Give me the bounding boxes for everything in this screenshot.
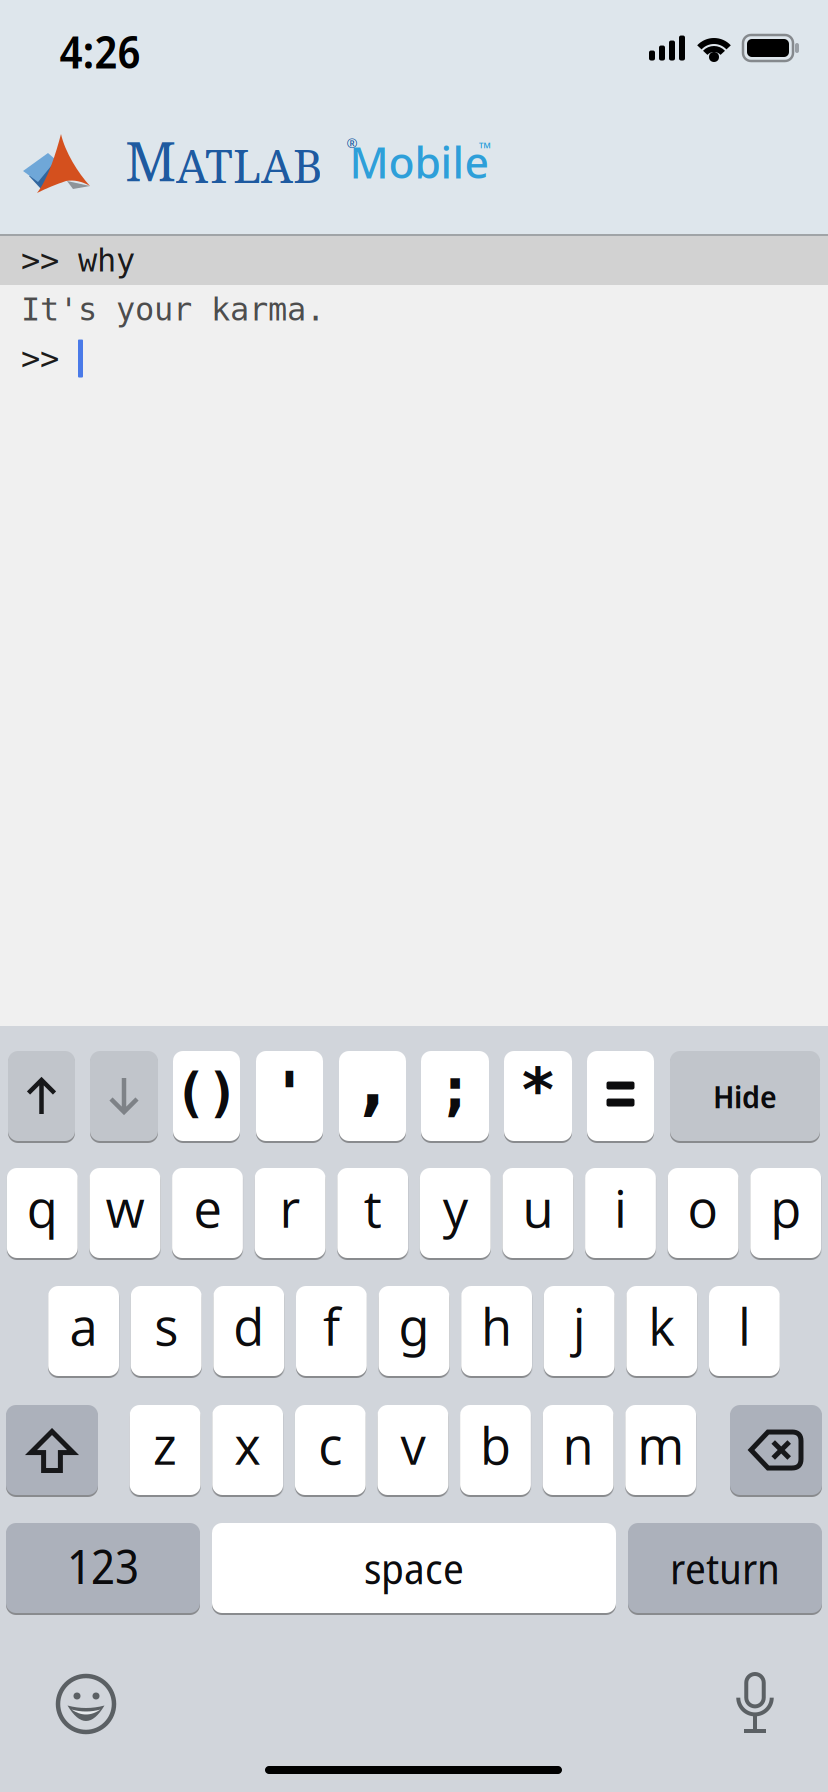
button[interactable]: r xyxy=(255,1168,325,1258)
staticText: Hide xyxy=(713,1075,777,1117)
staticText: ; xyxy=(437,1056,472,1122)
button[interactable]: Emoji xyxy=(55,1673,117,1735)
button[interactable]: Delete xyxy=(730,1405,822,1495)
button[interactable]: w xyxy=(89,1168,160,1258)
staticText: 4:26 xyxy=(59,20,140,82)
button[interactable]: q xyxy=(7,1168,78,1258)
button[interactable]: Shift xyxy=(6,1405,98,1495)
button[interactable]: n xyxy=(543,1405,613,1495)
button[interactable]: Scroll down xyxy=(90,1051,158,1141)
button[interactable]: 123 xyxy=(6,1523,200,1613)
staticText: i xyxy=(614,1173,627,1242)
staticText: g xyxy=(398,1291,429,1360)
button[interactable]: , xyxy=(339,1051,406,1141)
staticText: Mobile xyxy=(349,134,488,190)
staticText: ATLAB xyxy=(176,134,323,196)
button[interactable]: v xyxy=(377,1405,448,1495)
staticText: M xyxy=(125,123,176,197)
staticText: n xyxy=(563,1410,594,1479)
button[interactable]: d xyxy=(213,1286,284,1376)
button[interactable]: e xyxy=(172,1168,243,1258)
staticText: v xyxy=(400,1410,425,1479)
button[interactable]: x xyxy=(212,1405,283,1495)
staticText: t xyxy=(364,1173,382,1242)
staticText: q xyxy=(27,1173,58,1242)
button[interactable]: = xyxy=(587,1051,654,1141)
button[interactable]: j xyxy=(544,1286,615,1376)
staticText: c xyxy=(318,1410,342,1479)
staticText: 123 xyxy=(67,1534,139,1598)
staticText: o xyxy=(688,1173,719,1242)
staticText: e xyxy=(193,1173,221,1242)
staticText: p xyxy=(770,1173,801,1242)
button[interactable]: i xyxy=(585,1168,656,1258)
button[interactable]: y xyxy=(420,1168,491,1258)
button[interactable]: g xyxy=(379,1286,449,1376)
button[interactable]: l xyxy=(709,1286,780,1376)
button[interactable]: h xyxy=(461,1286,532,1376)
button[interactable]: Scroll up xyxy=(8,1051,75,1141)
button[interactable]: ' xyxy=(256,1051,323,1141)
staticText: u xyxy=(522,1173,553,1242)
button[interactable]: b xyxy=(460,1405,531,1495)
staticText: It's your karma. xyxy=(21,291,325,328)
button[interactable]: u xyxy=(502,1168,573,1258)
staticText: * xyxy=(519,1055,556,1125)
button[interactable]: Dictate xyxy=(736,1674,774,1734)
button[interactable]: t xyxy=(337,1168,408,1258)
staticText: r xyxy=(280,1173,301,1242)
staticText: ™ xyxy=(479,137,491,159)
button[interactable]: space xyxy=(212,1523,616,1613)
staticText: d xyxy=(233,1291,264,1360)
button[interactable]: f xyxy=(296,1286,367,1376)
button[interactable]: * xyxy=(504,1051,572,1141)
button[interactable]: Hide xyxy=(670,1051,820,1141)
button[interactable]: () xyxy=(173,1051,240,1141)
button[interactable]: o xyxy=(668,1168,738,1258)
staticText: h xyxy=(481,1291,512,1360)
staticText: k xyxy=(648,1291,675,1360)
staticText: z xyxy=(153,1410,177,1479)
staticText: ® xyxy=(346,134,357,152)
button[interactable]: p xyxy=(750,1168,821,1258)
staticText: >> xyxy=(21,340,78,377)
staticText: return xyxy=(670,1539,780,1597)
staticText: w xyxy=(105,1173,144,1242)
button[interactable]: return xyxy=(628,1523,822,1613)
button[interactable]: a xyxy=(48,1286,119,1376)
staticText: () xyxy=(174,1063,238,1123)
staticText: l xyxy=(738,1291,751,1360)
staticText: b xyxy=(480,1410,511,1479)
staticText: y xyxy=(443,1173,468,1242)
staticText: >> why xyxy=(21,242,135,279)
staticText: a xyxy=(70,1291,98,1360)
staticText: s xyxy=(154,1291,178,1360)
button[interactable]: ; xyxy=(421,1051,489,1141)
staticText: m xyxy=(637,1410,684,1479)
button[interactable]: m xyxy=(625,1405,696,1495)
staticText: f xyxy=(323,1291,340,1360)
staticText: x xyxy=(234,1410,261,1479)
button[interactable]: c xyxy=(295,1405,366,1495)
staticText: space xyxy=(364,1539,464,1597)
staticText: j xyxy=(573,1291,586,1360)
button[interactable]: s xyxy=(131,1286,202,1376)
button[interactable]: z xyxy=(130,1405,200,1495)
staticText: , xyxy=(351,1041,394,1123)
staticText: ' xyxy=(271,1059,308,1129)
button[interactable]: k xyxy=(626,1286,697,1376)
